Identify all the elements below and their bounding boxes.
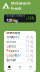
staticText: 24 kg bbox=[26, 35, 34, 39]
staticText: 22 kg bbox=[26, 54, 34, 57]
staticText: Tomatoes bbox=[6, 35, 18, 39]
button[interactable]: Peppers bbox=[4, 49, 36, 53]
staticText: Inventory bbox=[6, 31, 19, 35]
button[interactable]: Tomatoes bbox=[4, 35, 36, 40]
staticText: Spinach bbox=[6, 58, 16, 62]
staticText: Home bbox=[7, 69, 11, 70]
staticText: 18 kg bbox=[26, 40, 34, 43]
button[interactable]: Home bbox=[4, 64, 15, 72]
staticText: 12 kg bbox=[26, 49, 34, 53]
staticText: MetaFarm bbox=[11, 0, 31, 6]
button[interactable]: More bbox=[25, 64, 36, 72]
staticText: Fresh bbox=[11, 5, 22, 11]
staticText: Lettuce bbox=[6, 40, 16, 43]
staticText: Today's harvest bbox=[6, 14, 25, 17]
button[interactable]: Spinach bbox=[4, 58, 36, 63]
staticText: +12% bbox=[26, 17, 34, 20]
button[interactable]: Lettuce bbox=[4, 40, 36, 44]
staticText: 9 kg bbox=[28, 58, 34, 62]
staticText: 31 kg bbox=[26, 45, 34, 48]
staticText: Cucumber bbox=[6, 54, 20, 57]
button[interactable]: Stats bbox=[15, 64, 25, 72]
staticText: Peppers bbox=[6, 49, 18, 53]
staticText: Carrots bbox=[6, 45, 15, 48]
staticText: Stats bbox=[18, 69, 21, 70]
button[interactable]: Carrots bbox=[4, 44, 36, 49]
staticText: More bbox=[29, 69, 33, 70]
button[interactable]: Cucumber bbox=[4, 53, 36, 58]
staticText: 128 kg bbox=[6, 18, 18, 23]
